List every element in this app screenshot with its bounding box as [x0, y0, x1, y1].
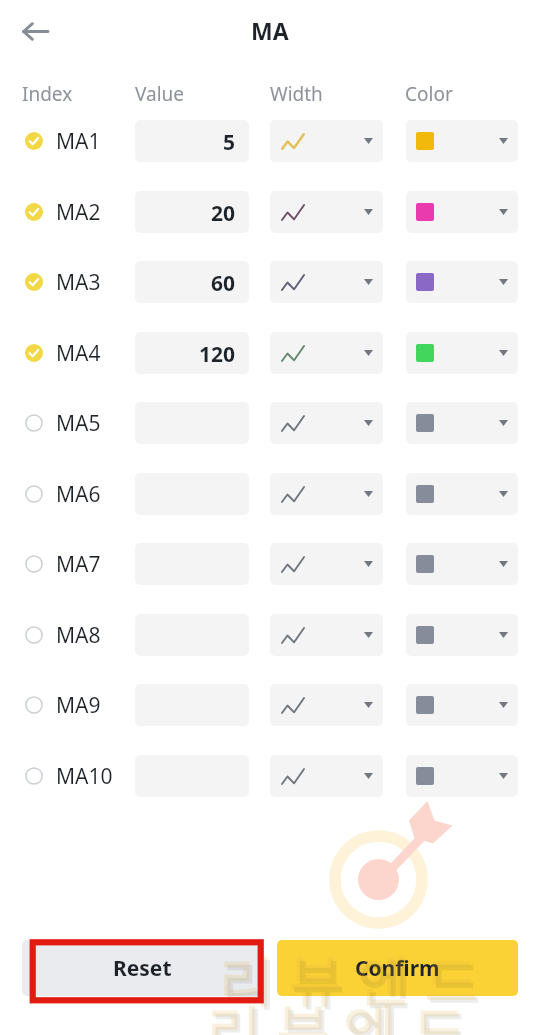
staticText: MA7	[56, 550, 101, 579]
button[interactable]: Line colour	[406, 120, 518, 162]
button[interactable]: MA2	[25, 193, 129, 231]
staticText: MA3	[56, 268, 101, 297]
button[interactable]: Line width	[270, 120, 383, 162]
button[interactable]: Line colour	[406, 261, 518, 303]
button[interactable]: MA5	[25, 404, 129, 442]
button[interactable]: Line colour	[406, 614, 518, 656]
button[interactable]: MA6	[25, 475, 129, 513]
staticText: Reset	[113, 954, 172, 983]
button[interactable]: MA9	[25, 686, 129, 724]
button[interactable]: Back	[12, 8, 58, 54]
button[interactable]: Line colour	[406, 332, 518, 374]
staticText: MA2	[56, 198, 101, 227]
button[interactable]: MA3	[25, 263, 129, 301]
staticText: MA9	[56, 691, 101, 720]
staticText: MA6	[56, 480, 101, 509]
staticText: Color	[405, 81, 453, 107]
button[interactable]: Line width	[270, 473, 383, 515]
button[interactable]: 60	[135, 261, 249, 303]
button[interactable]: Line colour	[406, 755, 518, 797]
button[interactable]: MA8	[25, 616, 129, 654]
staticText: MA10	[56, 762, 113, 791]
staticText: 5	[223, 128, 236, 157]
button[interactable]: Line colour	[406, 402, 518, 444]
button[interactable]: Line colour	[406, 473, 518, 515]
button[interactable]: Line width	[270, 332, 383, 374]
staticText: 20	[211, 199, 236, 228]
staticText: MA	[251, 15, 289, 46]
staticText: Confirm	[355, 954, 440, 983]
button[interactable]: Line width	[270, 755, 383, 797]
button[interactable]: MA1	[25, 122, 129, 160]
staticText: 60	[211, 269, 236, 298]
button[interactable]: Line width	[270, 684, 383, 726]
button[interactable]: MA10	[25, 757, 129, 795]
button[interactable]: 20	[135, 191, 249, 233]
staticText: Value	[135, 81, 185, 107]
staticText: 리뷰엔드	[215, 950, 487, 1018]
button[interactable]: Line width	[270, 543, 383, 585]
button[interactable]: Confirm	[277, 940, 518, 996]
staticText: MA4	[56, 339, 101, 368]
button[interactable]: 5	[135, 120, 249, 162]
button[interactable]: Line colour	[406, 543, 518, 585]
button[interactable]: MA7	[25, 545, 129, 583]
staticText: Index	[22, 81, 73, 107]
button[interactable]: Line width	[270, 614, 383, 656]
staticText: 리뷰엔드	[203, 999, 475, 1035]
staticText: 리뷰엔드	[212, 947, 484, 1015]
button[interactable]: Line width	[270, 402, 383, 444]
staticText: 리뷰엔드	[200, 996, 472, 1035]
button[interactable]: Reset	[22, 940, 263, 996]
staticText: MA1	[56, 127, 101, 156]
staticText: MA5	[56, 409, 101, 438]
button[interactable]: MA4	[25, 334, 129, 372]
staticText: 120	[199, 340, 236, 369]
button[interactable]: Line colour	[406, 191, 518, 233]
button[interactable]: 120	[135, 332, 249, 374]
staticText: MA8	[56, 621, 101, 650]
button[interactable]: Line colour	[406, 684, 518, 726]
button[interactable]: Line width	[270, 261, 383, 303]
staticText: Width	[270, 81, 323, 107]
button[interactable]: Line width	[270, 191, 383, 233]
